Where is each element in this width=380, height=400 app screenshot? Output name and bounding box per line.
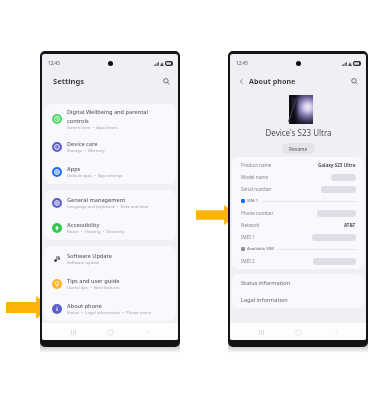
button[interactable]: Apps [44, 159, 176, 184]
staticText: 12:45 [236, 60, 248, 66]
staticText: Software Update [67, 252, 112, 260]
button[interactable]: IMEI 1 [232, 231, 364, 243]
staticText: Rename [289, 146, 308, 152]
other: Step 2 arrow [196, 205, 238, 225]
staticText: AT&T [344, 222, 356, 228]
staticText: Settings [53, 76, 85, 86]
staticText: Product name [241, 162, 272, 168]
staticText: Storage • Memory [67, 148, 105, 154]
button[interactable]: Legal information [232, 291, 364, 308]
button[interactable]: Network [232, 219, 364, 231]
staticText: Galaxy S23 Ultra [318, 162, 356, 168]
button[interactable]: Home [291, 325, 305, 339]
staticText: SIM 1 [247, 198, 259, 204]
button[interactable]: Recents [254, 325, 268, 339]
staticText: Default apps • App settings [67, 173, 123, 179]
staticText: Network [241, 222, 260, 228]
staticText: Accessibility [67, 221, 100, 229]
button[interactable]: Digital Wellbeing and parental controls [44, 104, 176, 134]
staticText: Apps [67, 165, 81, 173]
button[interactable]: Software Update [44, 246, 176, 271]
button[interactable]: Rename [282, 143, 315, 154]
staticText: Tips and user guide [67, 277, 120, 285]
button[interactable]: Search [349, 76, 360, 87]
staticText: General management [67, 196, 126, 204]
staticText: About phone [249, 76, 296, 86]
staticText: IMEI 1 [241, 234, 255, 240]
button[interactable]: Tips and user guide [44, 271, 176, 296]
staticText: Vision • Hearing • Dexterity [67, 229, 125, 235]
staticText: Available SIM [247, 246, 274, 252]
button[interactable]: Recents [66, 325, 80, 339]
button[interactable]: Back [236, 76, 246, 86]
button[interactable]: IMEI 2 [232, 255, 364, 267]
button[interactable]: Serial number [232, 183, 364, 195]
staticText: Screen time • App timers [67, 125, 118, 131]
staticText: 12:45 [48, 60, 60, 66]
button[interactable]: Model name [232, 171, 364, 183]
staticText: IMEI 2 [241, 258, 255, 264]
staticText: Device's S23 Ultra [265, 127, 332, 138]
staticText: Digital Wellbeing and parental controls [67, 108, 170, 125]
staticText: About phone [67, 302, 102, 310]
other: Step 1 arrow [6, 296, 51, 319]
staticText: Useful tips • New features [67, 285, 120, 291]
button[interactable]: Back [329, 325, 343, 339]
button[interactable]: Accessibility [44, 215, 176, 240]
staticText: Status • Legal information • Phone name [67, 310, 152, 316]
button[interactable]: Status information [232, 274, 364, 291]
staticText: Model name [241, 174, 269, 180]
staticText: Serial number [241, 186, 272, 192]
staticText: Device care [67, 140, 98, 148]
button[interactable]: General management [44, 190, 176, 215]
staticText: Phone number [241, 210, 274, 216]
button[interactable]: Search [160, 75, 172, 87]
staticText: Software update [67, 260, 100, 266]
staticText: Language and keyboard • Date and time [67, 204, 149, 210]
staticText: Status information [241, 279, 291, 287]
button[interactable]: Phone number [232, 207, 364, 219]
button[interactable]: Home [103, 325, 117, 339]
button[interactable]: Back [141, 325, 155, 339]
button[interactable]: Product name [232, 159, 364, 171]
staticText: Legal information [241, 296, 288, 304]
button[interactable]: About phone [44, 296, 176, 321]
button[interactable]: Device care [44, 134, 176, 159]
